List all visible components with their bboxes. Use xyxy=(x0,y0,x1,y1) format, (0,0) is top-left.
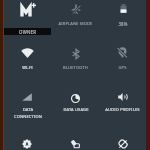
button[interactable]: Rotation lock xyxy=(103,133,143,150)
staticText: 38% xyxy=(118,21,128,27)
staticText: DATA CONNECTION xyxy=(14,107,42,119)
button[interactable]: MIUI account xyxy=(18,2,38,20)
button[interactable]: Audio profiles xyxy=(99,83,146,117)
staticText: GPS xyxy=(118,65,127,70)
staticText: BLUETOOTH xyxy=(63,65,88,70)
staticText: OWNER xyxy=(19,29,37,35)
button[interactable]: Bluetooth xyxy=(52,39,99,73)
button[interactable]: Wi-Fi xyxy=(4,39,51,73)
button[interactable]: GPS xyxy=(99,39,146,73)
button[interactable]: Auto brightness xyxy=(7,133,47,150)
staticText: AUDIO PROFILES xyxy=(105,107,140,112)
button[interactable]: Airplane mode xyxy=(52,0,99,28)
button[interactable]: Data usage xyxy=(52,84,99,118)
button[interactable]: OWNER xyxy=(4,28,51,35)
button[interactable]: Data connection xyxy=(4,82,51,116)
button[interactable]: Battery xyxy=(99,0,146,28)
staticText: AIRPLANE MODE xyxy=(58,21,93,26)
staticText: DATA USAGE xyxy=(63,107,89,112)
button[interactable]: Auto rotate xyxy=(55,133,95,150)
staticText: WI-FI xyxy=(22,65,33,70)
